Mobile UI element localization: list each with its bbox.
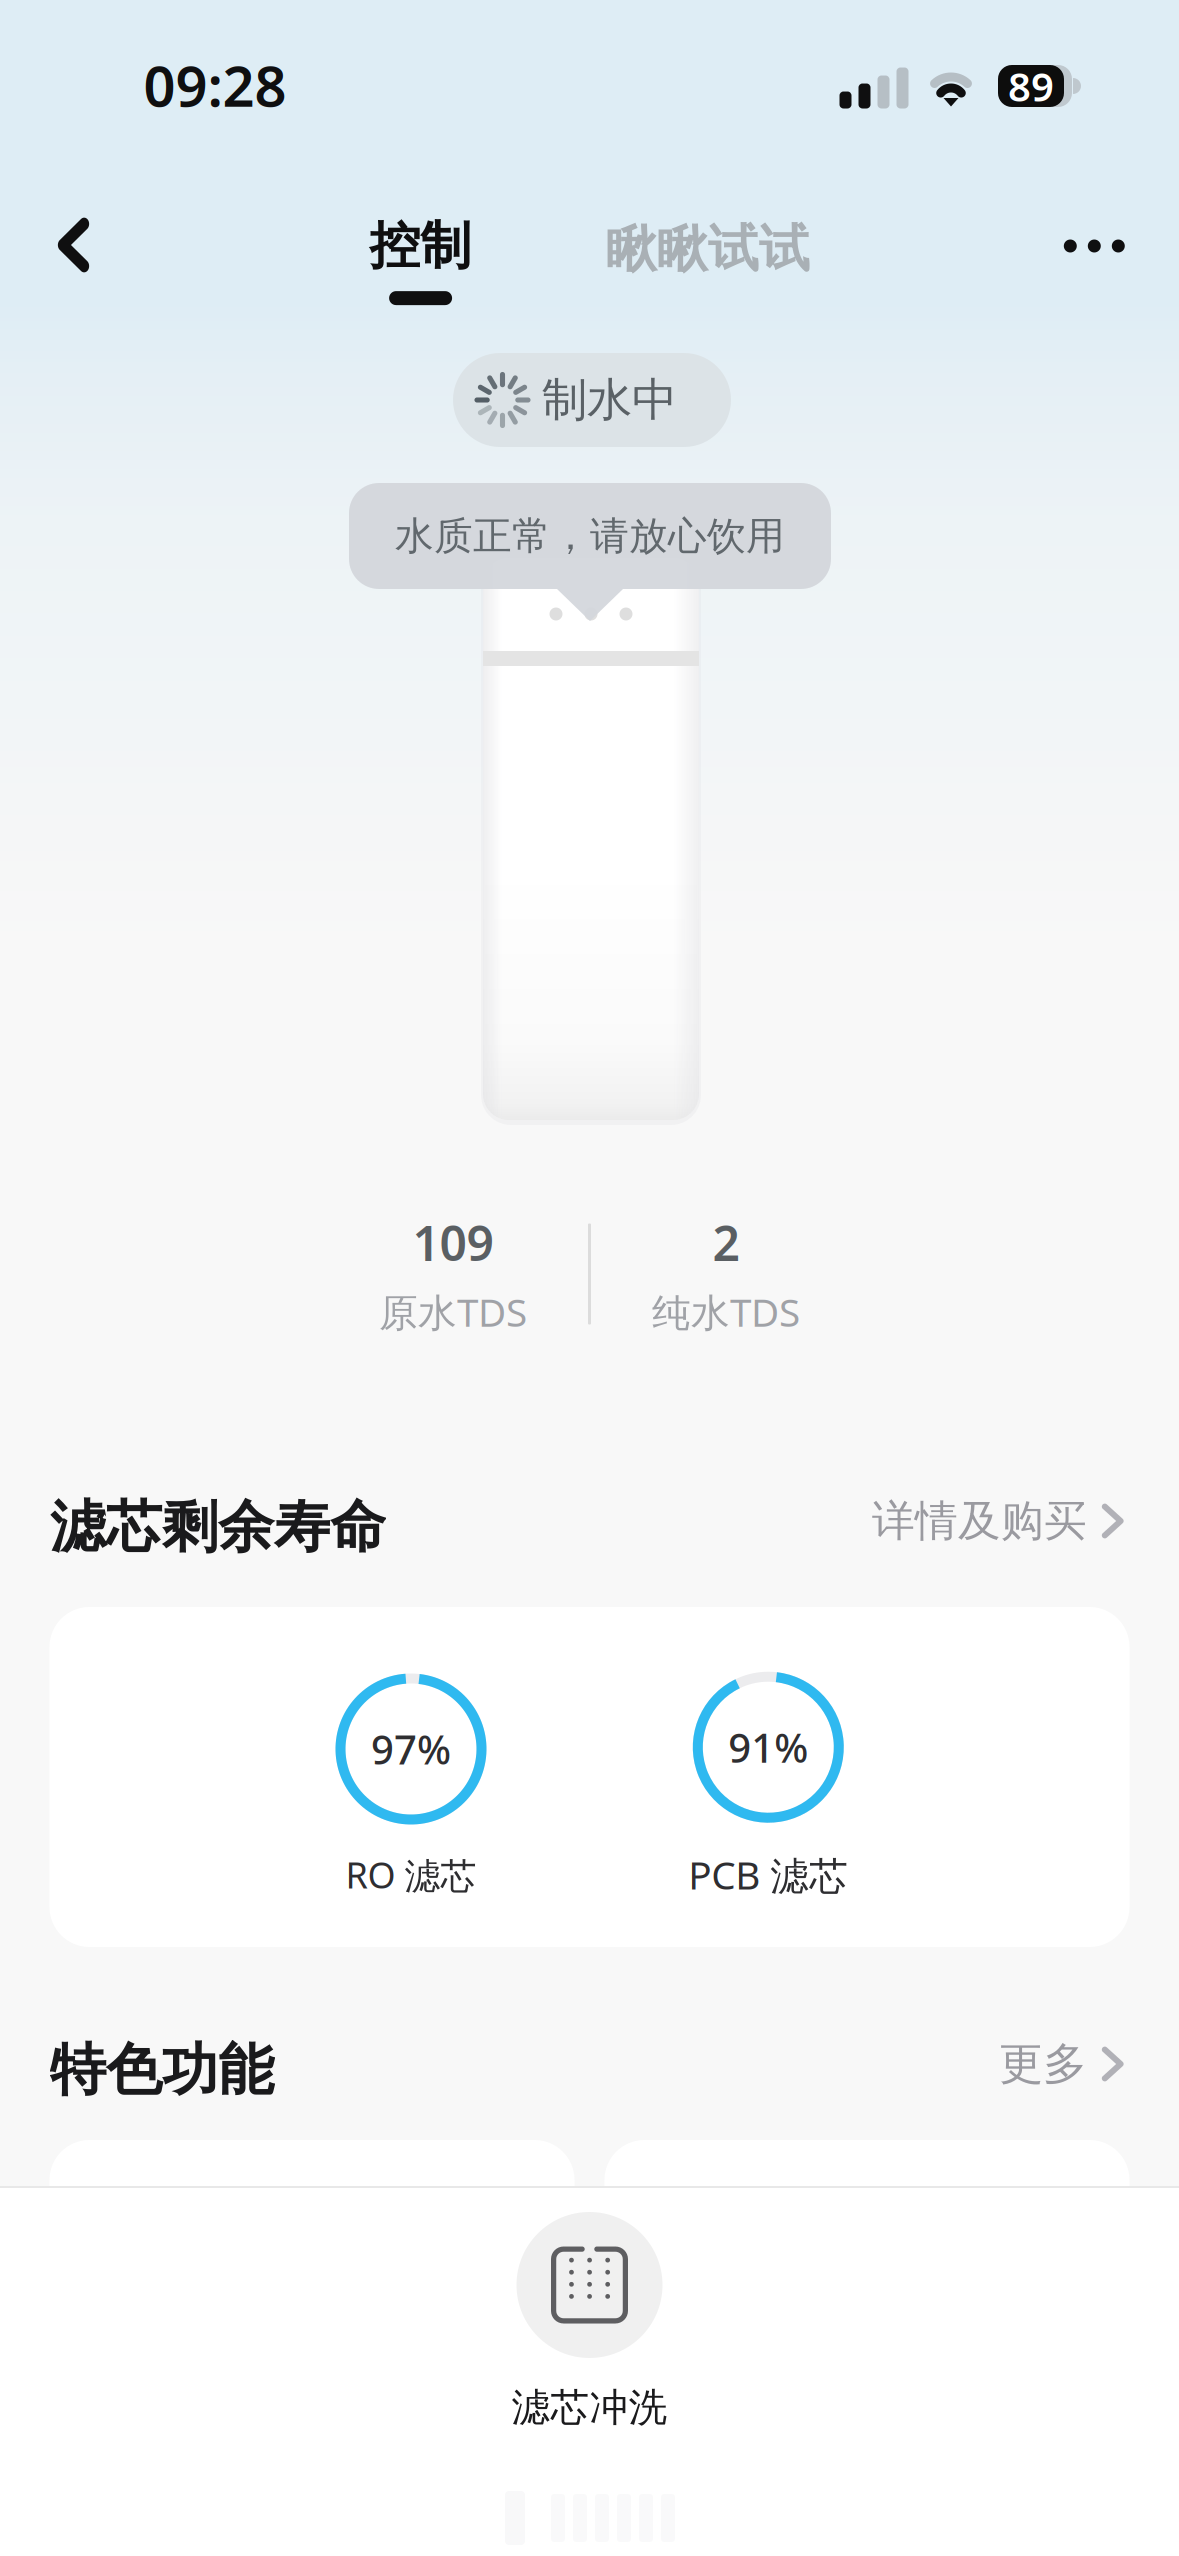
staticText: 97% [371, 1722, 451, 1775]
staticText: PCB 滤芯 [688, 1849, 848, 1900]
staticText: 91% [728, 1721, 808, 1774]
button[interactable]: 滤芯冲洗 [0, 2188, 1179, 2556]
button[interactable]: More [1039, 196, 1149, 296]
staticText: 滤芯冲洗 [511, 2384, 667, 2431]
staticText: 特色功能 [50, 2036, 274, 2104]
button[interactable]: 控制 [321, 200, 521, 320]
staticText: 瞅瞅试试 [606, 218, 810, 280]
button[interactable]: 详情及购买 [872, 1487, 1130, 1567]
staticText: 109 [412, 1210, 493, 1274]
staticText: 09:28 [143, 48, 286, 122]
button[interactable]: 更多 [999, 2030, 1130, 2110]
button[interactable]: Back [23, 195, 123, 295]
staticText: 制水中 [542, 372, 677, 428]
staticText: RO 滤芯 [345, 1850, 476, 1898]
button[interactable]: 瞅瞅试试 [578, 199, 838, 299]
staticText: 2 [712, 1210, 739, 1274]
staticText: 更多 [999, 2037, 1087, 2091]
staticText: 原水TDS [379, 1286, 527, 1337]
staticText: 纯水TDS [652, 1286, 800, 1337]
staticText: 89 [1008, 59, 1054, 112]
staticText: 控制 [370, 215, 472, 277]
staticText: 水质正常，请放心饮用 [395, 512, 785, 560]
staticText: 详情及购买 [872, 1495, 1087, 1547]
staticText: 滤芯剩余寿命 [50, 1493, 386, 1561]
